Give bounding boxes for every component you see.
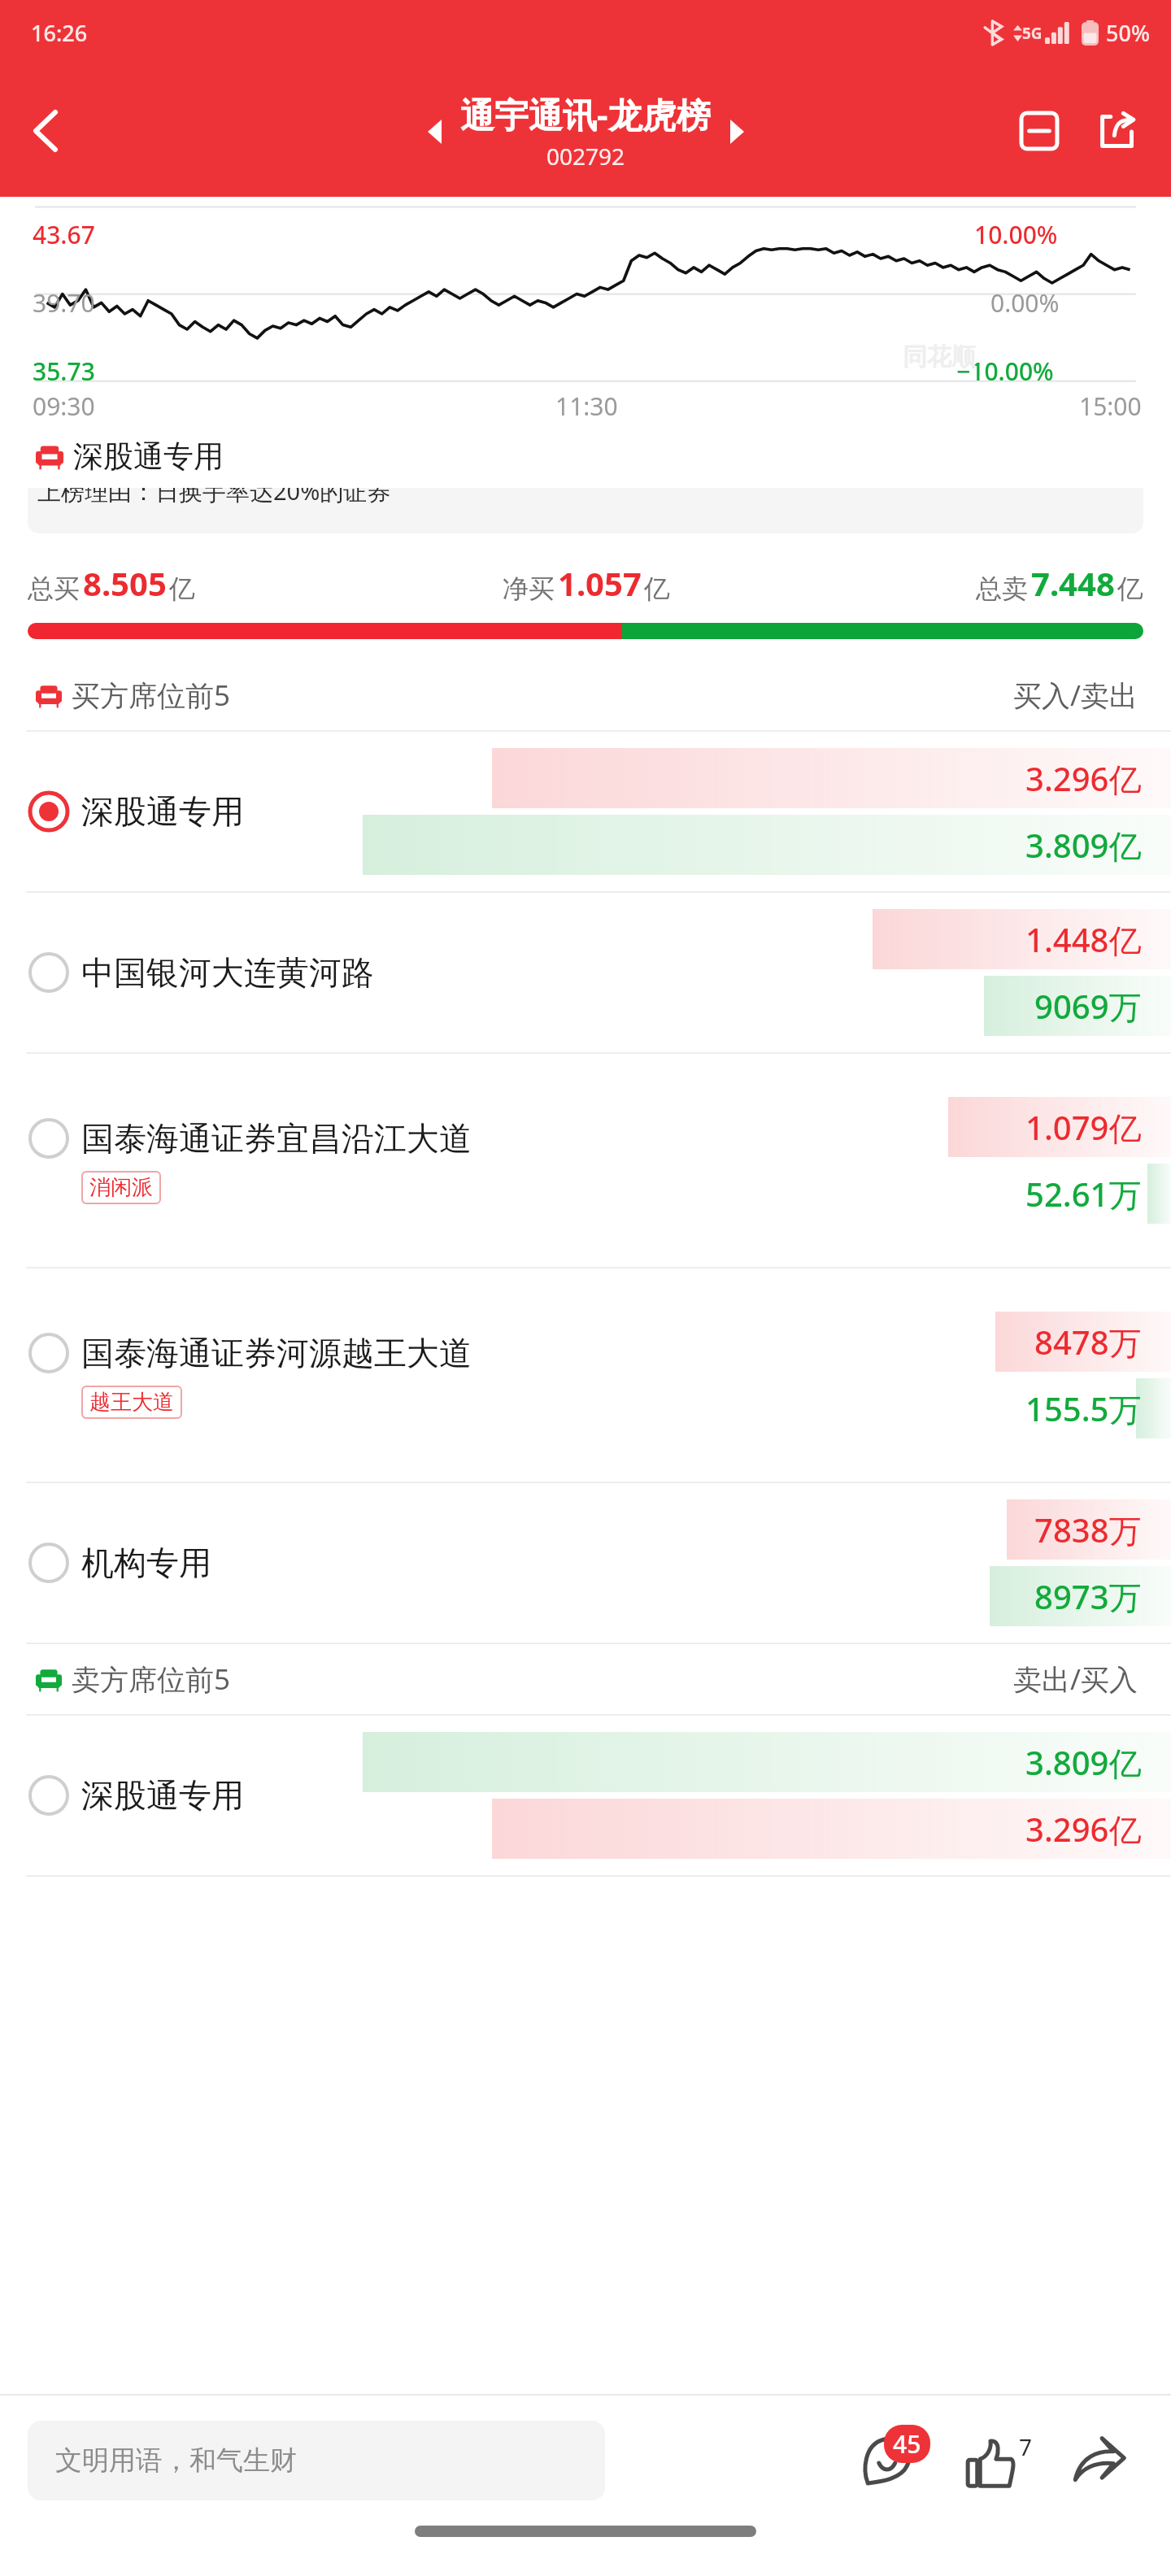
- staticText: 0.00%: [990, 286, 1060, 320]
- staticText: 8973万: [1034, 1574, 1142, 1619]
- staticText: 002792: [546, 141, 625, 172]
- button[interactable]: 卖方席位前5: [0, 1644, 1171, 1714]
- staticText: 卖出/买入: [1013, 1660, 1138, 1699]
- button[interactable]: 买方席位前5: [0, 660, 1171, 730]
- staticText: 45: [893, 2427, 921, 2461]
- button[interactable]: 3.809亿: [0, 1716, 1171, 1877]
- button[interactable]: Next stock: [716, 111, 758, 153]
- staticText: 国泰海通证券宜昌沿江大道: [81, 1118, 472, 1159]
- button[interactable]: Like: [950, 2417, 1038, 2504]
- staticText: 深股通专用: [81, 1775, 244, 1816]
- staticText: 50%: [1106, 18, 1150, 48]
- staticText: 通宇通讯-龙虎榜: [460, 91, 711, 137]
- button[interactable]: Comments: [844, 2417, 932, 2504]
- staticText: 9069万: [1034, 984, 1142, 1029]
- staticText: 亿: [644, 572, 670, 605]
- button[interactable]: 1.448亿: [0, 893, 1171, 1054]
- button[interactable]: Share: [1078, 92, 1156, 170]
- staticText: 1.448亿: [1025, 917, 1142, 962]
- staticText: 净买: [503, 572, 555, 605]
- staticText: 同花顺: [903, 342, 976, 372]
- button[interactable]: 文明用语，和气生财: [28, 2421, 605, 2500]
- staticText: 09:30: [33, 389, 95, 423]
- button[interactable]: Previous stock: [413, 111, 455, 153]
- staticText: 155.5万: [1025, 1386, 1142, 1431]
- staticText: 文明用语，和气生财: [55, 2443, 297, 2478]
- staticText: 机构专用: [81, 1543, 211, 1583]
- staticText: 总卖: [976, 572, 1028, 605]
- staticText: 买入/卖出: [1013, 676, 1138, 715]
- button[interactable]: Back: [0, 86, 89, 176]
- staticText: −10.00%: [956, 355, 1054, 388]
- button[interactable]: 通宇通讯-龙虎榜: [455, 91, 716, 172]
- staticText: 买方席位前5: [72, 676, 231, 715]
- staticText: 1.079亿: [1025, 1105, 1142, 1150]
- staticText: 7: [1019, 2431, 1033, 2462]
- button[interactable]: 7838万: [0, 1483, 1171, 1644]
- staticText: 3.296亿: [1025, 1807, 1142, 1851]
- staticText: 国泰海通证券河源越王大道: [81, 1333, 472, 1373]
- staticText: 3.809亿: [1025, 823, 1142, 868]
- button[interactable]: Share: [1056, 2417, 1143, 2504]
- staticText: 越王大道: [89, 1389, 174, 1416]
- staticText: 52.61万: [1025, 1172, 1142, 1216]
- staticText: 8478万: [1034, 1320, 1142, 1364]
- staticText: 43.67: [33, 218, 95, 251]
- staticText: 10.00%: [974, 218, 1058, 251]
- staticText: 7.448: [1031, 561, 1115, 605]
- staticText: 亿: [169, 572, 195, 605]
- staticText: 上榜理由：日换手率达20%的证券: [37, 488, 391, 507]
- staticText: 总买: [28, 572, 80, 605]
- staticText: 消闲派: [89, 1174, 153, 1201]
- staticText: 深股通专用: [81, 791, 244, 832]
- staticText: 1.057: [558, 561, 642, 605]
- staticText: 5G: [1022, 23, 1043, 44]
- staticText: 35.73: [33, 355, 95, 388]
- staticText: 8.505: [83, 561, 167, 605]
- staticText: 3.809亿: [1025, 1740, 1142, 1785]
- button[interactable]: 1.079亿: [0, 1054, 1171, 1268]
- staticText: 中国银河大连黄河路: [81, 952, 374, 993]
- staticText: 16:26: [31, 18, 88, 48]
- staticText: 卖方席位前5: [72, 1660, 231, 1699]
- button[interactable]: Collapse: [1000, 92, 1078, 170]
- staticText: 15:00: [1079, 389, 1142, 423]
- staticText: 39.70: [33, 286, 95, 320]
- staticText: 11:30: [555, 389, 618, 423]
- staticText: 深股通专用: [73, 437, 224, 476]
- staticText: 7838万: [1034, 1508, 1142, 1552]
- button[interactable]: 3.296亿: [0, 732, 1171, 893]
- staticText: 3.296亿: [1025, 756, 1142, 801]
- button[interactable]: 深股通专用: [0, 424, 1171, 488]
- button[interactable]: 8478万: [0, 1268, 1171, 1483]
- staticText: 亿: [1117, 572, 1143, 605]
